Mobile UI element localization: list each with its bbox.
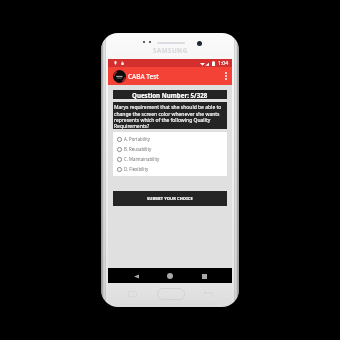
staticText: B. Reusability — [124, 146, 152, 152]
button[interactable]: A. Portability — [117, 134, 227, 144]
button[interactable]: Home — [164, 270, 176, 282]
staticText: Marys requirement that she should be abl… — [114, 104, 226, 129]
button[interactable]: C. Maintainability — [117, 154, 227, 164]
button[interactable]: SUBMIT YOUR CHOICE — [113, 191, 227, 206]
staticText: CABA Test — [128, 72, 159, 81]
button[interactable]: Recents — [198, 270, 210, 282]
staticText: A. Portability — [124, 136, 150, 142]
button[interactable]: Back — [203, 291, 213, 297]
staticText: 1:04 — [218, 60, 229, 67]
button[interactable]: Back — [130, 270, 142, 282]
button[interactable]: Recents — [128, 291, 137, 297]
button[interactable]: More options — [222, 69, 229, 83]
button[interactable]: Home — [157, 288, 185, 300]
staticText: SAMSUNG — [153, 46, 188, 54]
button[interactable]: B. Reusability — [117, 144, 227, 154]
staticText: C. Maintainability — [124, 156, 160, 162]
staticText: Question Number: 5/328 — [132, 91, 208, 99]
staticText: SUBMIT YOUR CHOICE — [147, 196, 193, 201]
button[interactable]: D. Flexibility — [117, 164, 227, 174]
staticText: D. Flexibility — [124, 166, 149, 172]
